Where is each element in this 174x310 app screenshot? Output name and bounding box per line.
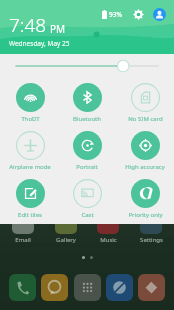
staticText: Gallery bbox=[56, 236, 76, 244]
button[interactable]: App bbox=[138, 274, 165, 301]
button[interactable]: Portrait bbox=[59, 130, 115, 171]
staticText: Edit tiles bbox=[18, 211, 42, 219]
staticText: Cast bbox=[81, 211, 94, 219]
staticText: 93% bbox=[109, 10, 122, 19]
staticText: Portrait bbox=[76, 163, 98, 171]
button[interactable]: No SIM card bbox=[117, 82, 173, 123]
button[interactable]: Music bbox=[89, 212, 127, 244]
staticText: Music bbox=[100, 236, 117, 244]
button[interactable]: Settings bbox=[132, 212, 170, 244]
staticText: High accuracy bbox=[125, 163, 165, 171]
staticText: Priority only bbox=[128, 211, 163, 219]
button[interactable]: App bbox=[9, 274, 36, 301]
staticText: Email bbox=[15, 236, 31, 244]
button[interactable]: ThoDT bbox=[2, 82, 58, 123]
staticText: Settings bbox=[140, 236, 163, 244]
button[interactable]: Bluetooth bbox=[59, 82, 115, 123]
staticText: Airplane mode bbox=[9, 163, 51, 171]
button[interactable]: App bbox=[106, 274, 133, 301]
staticText: ThoDT bbox=[21, 115, 40, 123]
button[interactable]: Airplane mode bbox=[2, 130, 58, 171]
button[interactable]: High accuracy bbox=[117, 130, 173, 171]
button[interactable]: Edit tiles bbox=[2, 178, 58, 219]
staticText: Bluetooth bbox=[73, 115, 101, 123]
staticText: PM bbox=[50, 22, 66, 36]
button[interactable]: App bbox=[41, 274, 68, 301]
button[interactable]: Settings bbox=[131, 7, 145, 21]
button[interactable]: Brightness bbox=[0, 54, 174, 78]
staticText: 7:48 bbox=[9, 12, 47, 38]
button[interactable]: Email bbox=[4, 212, 42, 244]
button[interactable]: App bbox=[74, 274, 101, 301]
button[interactable]: Priority only bbox=[117, 178, 173, 219]
button[interactable]: User bbox=[152, 7, 166, 21]
button[interactable]: Gallery bbox=[47, 212, 85, 244]
staticText: No SIM card bbox=[128, 115, 163, 123]
button[interactable]: Cast bbox=[59, 178, 115, 219]
staticText: Wednesday, May 25 bbox=[9, 39, 70, 48]
